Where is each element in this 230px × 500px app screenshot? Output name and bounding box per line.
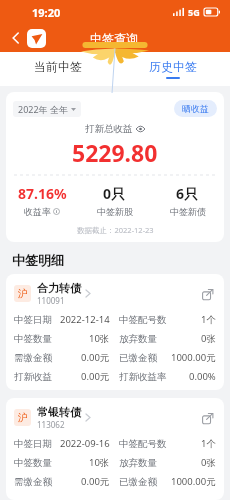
button[interactable]: 历史中签 xyxy=(115,52,230,86)
staticText: 0张 xyxy=(201,456,216,469)
staticText: 数据截止：2022-12-23 xyxy=(77,225,154,235)
button[interactable]: 沪 xyxy=(6,398,224,500)
staticText: 19:20 xyxy=(32,5,61,20)
staticText: 中签配号数 xyxy=(119,438,167,450)
staticText: 0.00元 xyxy=(81,475,110,488)
staticText: 中签查询 xyxy=(90,31,138,46)
staticText: 需缴金额 xyxy=(14,352,52,364)
staticText: 中签日期 xyxy=(14,438,52,450)
staticText: 放弃数量 xyxy=(119,457,157,469)
button[interactable]: 当前中签 xyxy=(0,52,115,86)
staticText: 0只 xyxy=(103,184,126,203)
staticText: 2022-09-16 xyxy=(60,437,110,450)
staticText: 10张 xyxy=(89,456,110,469)
button[interactable]: 沪 xyxy=(6,274,224,390)
staticText: 中签新债 xyxy=(170,206,206,217)
staticText: 1个 xyxy=(201,313,216,326)
button[interactable]: Back xyxy=(7,29,25,47)
staticText: 需缴金额 xyxy=(14,476,52,488)
staticText: 历史中签 xyxy=(149,59,197,74)
staticText: 收益率 xyxy=(24,206,51,217)
staticText: 6只 xyxy=(176,184,199,203)
staticText: 5229.80 xyxy=(72,137,158,168)
button[interactable]: 2022年 全年 xyxy=(13,101,81,117)
staticText: 113062 xyxy=(37,419,65,430)
staticText: 2022年 全年 xyxy=(18,103,68,115)
staticText: 0.00% xyxy=(189,370,216,383)
staticText: 0.00元 xyxy=(81,351,110,364)
staticText: 合力转债 xyxy=(37,281,81,295)
staticText: 常银转债 xyxy=(37,405,81,419)
staticText: 当前中签 xyxy=(34,59,82,74)
staticText: 已缴金额 xyxy=(119,476,157,488)
staticText: 1个 xyxy=(201,437,216,450)
staticText: 沪 xyxy=(18,287,28,300)
button[interactable]: Open detail xyxy=(198,285,216,303)
staticText: 1000.00元 xyxy=(171,351,216,364)
staticText: 2022-12-14 xyxy=(60,313,110,326)
staticText: 放弃数量 xyxy=(119,333,157,345)
staticText: 打新收益 xyxy=(14,371,52,383)
button[interactable]: 晒收益 xyxy=(174,100,217,117)
staticText: 中签明细 xyxy=(12,252,64,268)
staticText: 晒收益 xyxy=(182,103,209,114)
staticText: 中签配号数 xyxy=(119,314,167,326)
button[interactable]: Open detail xyxy=(198,409,216,427)
staticText: 5G xyxy=(188,6,200,18)
staticText: 沪 xyxy=(18,411,28,424)
staticText: 中签日期 xyxy=(14,314,52,326)
staticText: 中签数量 xyxy=(14,333,52,345)
staticText: 110091 xyxy=(37,295,65,306)
button[interactable]: App logo xyxy=(27,29,46,48)
staticText: 0.00元 xyxy=(81,370,110,383)
staticText: 1000.00元 xyxy=(171,475,216,488)
staticText: 中签新股 xyxy=(97,206,133,217)
staticText: 中签数量 xyxy=(14,457,52,469)
staticText: 打新收益率 xyxy=(119,371,167,383)
staticText: 打新总收益 xyxy=(85,123,133,135)
staticText: 0张 xyxy=(201,332,216,345)
staticText: 10张 xyxy=(89,332,110,345)
staticText: 已缴金额 xyxy=(119,352,157,364)
staticText: 87.16% xyxy=(18,184,67,203)
